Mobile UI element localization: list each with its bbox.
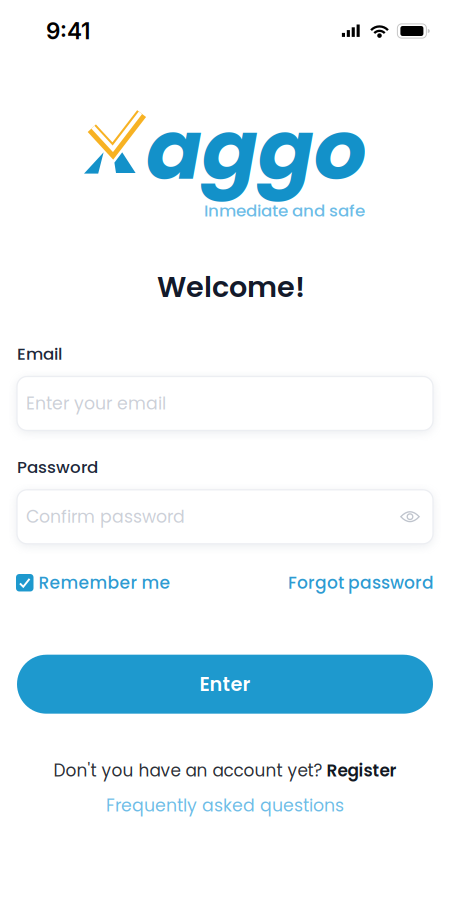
button[interactable]: Frequently asked questions (106, 793, 344, 818)
staticText: Password (17, 455, 98, 479)
staticText: 9:41 (46, 17, 90, 45)
staticText: Enter (199, 671, 250, 698)
staticText: Inmediate and safe (204, 199, 365, 222)
staticText: Welcome! (157, 267, 305, 307)
staticText: Forgot password (288, 571, 434, 595)
staticText: Email (17, 342, 62, 365)
staticText: Enter your email (26, 391, 166, 416)
staticText: Confirm password (26, 505, 185, 529)
staticText: Register (326, 759, 396, 782)
staticText: aggo (146, 92, 367, 208)
button[interactable]: Register (326, 759, 396, 782)
staticText: Remember me (38, 571, 170, 595)
button[interactable]: Remember me (16, 571, 170, 595)
button[interactable]: Forgot password (288, 571, 434, 595)
staticText: Don't you have an account yet? (53, 759, 322, 782)
staticText: Frequently asked questions (106, 793, 344, 818)
button[interactable]: Enter (17, 655, 433, 714)
